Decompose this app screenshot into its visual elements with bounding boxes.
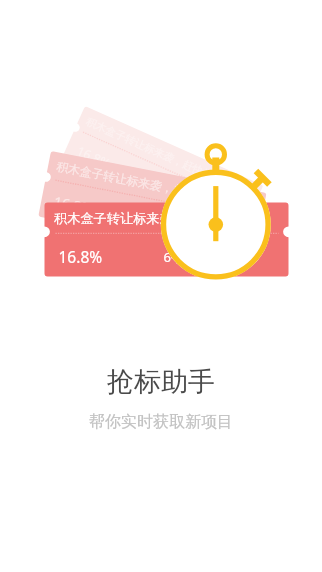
staticText: 帮你实时获取新项目: [89, 412, 233, 432]
staticText: 抢标助手: [107, 365, 215, 399]
